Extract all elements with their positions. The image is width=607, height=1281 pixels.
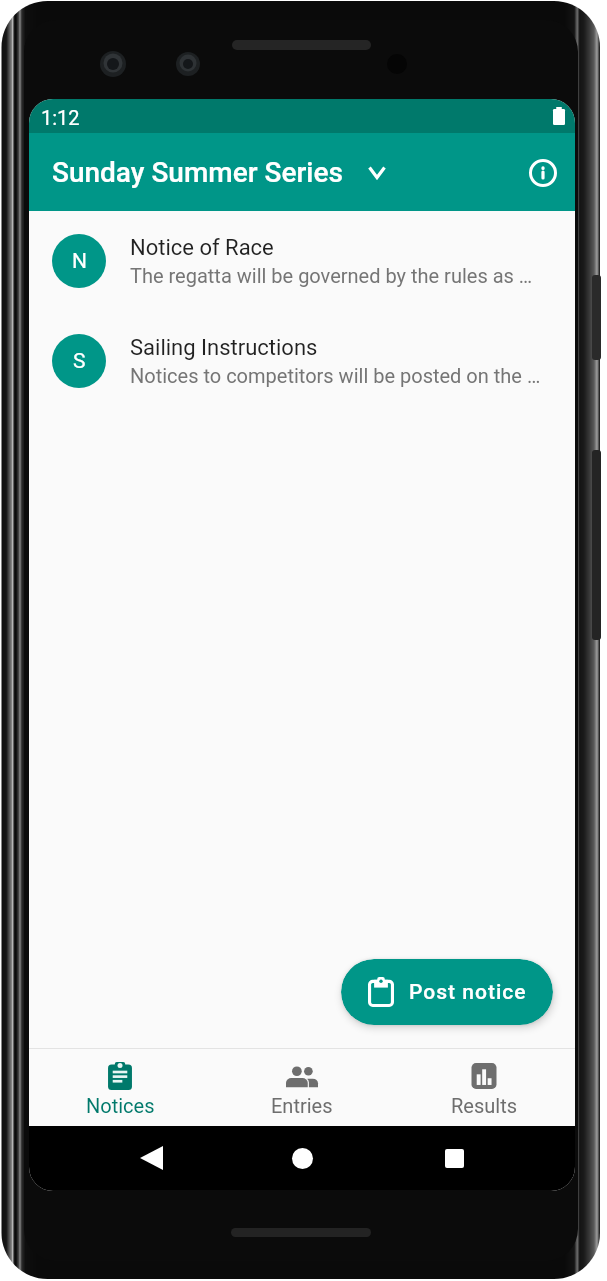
button[interactable]: Sunday Summer Series <box>52 156 505 189</box>
button[interactable]: Home <box>272 1128 332 1188</box>
staticText: S <box>73 349 86 374</box>
staticText: Results <box>451 1094 518 1117</box>
staticText: The regatta will be governed by the rule… <box>130 264 533 287</box>
button[interactable]: Entries <box>211 1049 393 1117</box>
staticText: Sailing Instructions <box>130 335 318 361</box>
staticText: Notice of Race <box>130 235 274 261</box>
button[interactable]: Info <box>526 156 560 190</box>
staticText: Post notice <box>409 980 527 1005</box>
staticText: Notices to competitors will be posted on… <box>130 364 541 387</box>
staticText: Notices <box>86 1094 155 1117</box>
staticText: Entries <box>271 1094 333 1117</box>
button[interactable]: N <box>29 211 575 311</box>
staticText: Sunday Summer Series <box>52 156 343 189</box>
button[interactable]: Back <box>121 1128 181 1188</box>
button[interactable]: Recent apps <box>424 1128 484 1188</box>
button[interactable]: S <box>29 311 575 411</box>
button[interactable]: Notices <box>29 1049 211 1117</box>
staticText: 1:12 <box>41 106 80 129</box>
button[interactable]: Results <box>393 1049 575 1117</box>
staticText: N <box>72 249 87 274</box>
button[interactable]: Post notice <box>341 959 553 1025</box>
